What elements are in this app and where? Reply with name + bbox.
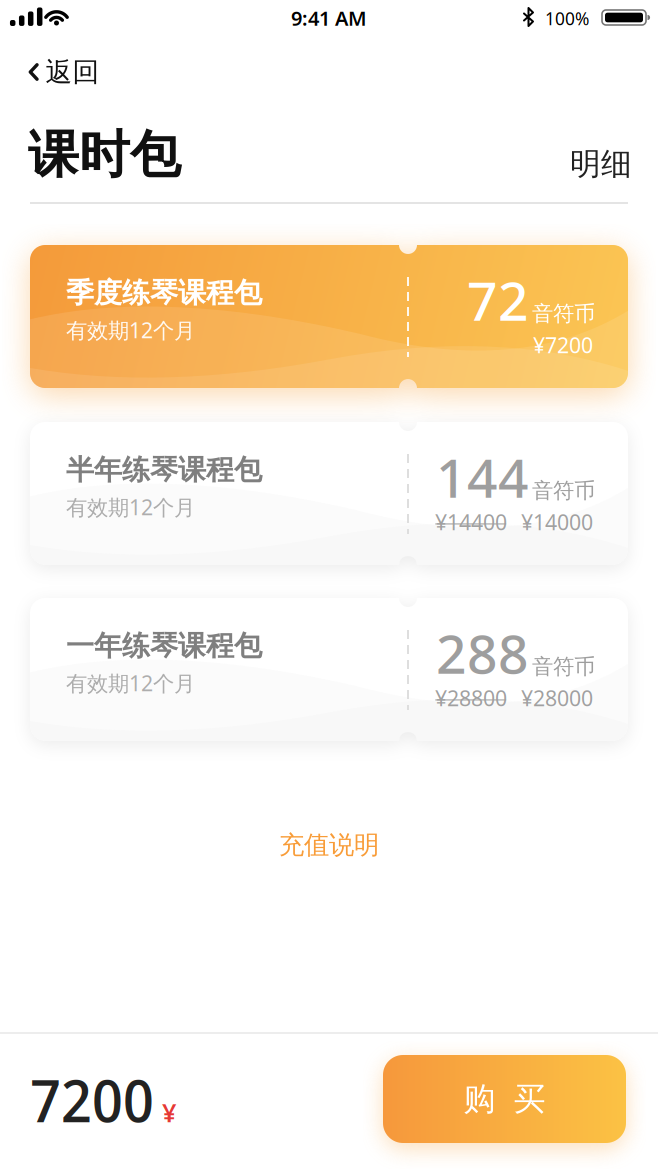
staticText: 买 — [513, 1079, 545, 1119]
staticText: 7200 — [30, 1061, 154, 1139]
staticText: 明细 — [570, 145, 632, 183]
staticText: ¥ — [162, 1096, 176, 1129]
staticText: ¥7200 — [533, 331, 593, 359]
staticText: 有效期12个月 — [66, 669, 195, 697]
button[interactable]: 明细 — [570, 145, 632, 183]
staticText: ¥14400 — [435, 508, 507, 536]
staticText: ¥14000 — [521, 508, 593, 536]
staticText: ¥28800 — [435, 684, 507, 712]
staticText: 音符币 — [532, 477, 595, 504]
staticText: 音符币 — [532, 653, 595, 680]
button[interactable]: 季度练琴课程包 — [30, 245, 628, 388]
button[interactable]: 一年练琴课程包 — [30, 598, 628, 741]
button[interactable]: 购 — [383, 1055, 626, 1143]
staticText: 100% — [545, 7, 589, 30]
staticText: 半年练琴课程包 — [66, 453, 262, 487]
staticText: 课时包 — [28, 124, 181, 186]
staticText: 音符币 — [532, 300, 595, 327]
staticText: 72 — [467, 265, 529, 335]
staticText: 288 — [436, 618, 529, 688]
staticText: 有效期12个月 — [66, 316, 195, 344]
staticText: 购 — [463, 1079, 495, 1119]
staticText: ¥28000 — [521, 684, 593, 712]
staticText: 有效期12个月 — [66, 493, 195, 521]
staticText: 144 — [436, 442, 529, 512]
button[interactable]: 半年练琴课程包 — [30, 422, 628, 565]
staticText: 季度练琴课程包 — [66, 276, 262, 310]
button[interactable]: 充值说明 — [279, 829, 379, 860]
staticText: 充值说明 — [279, 829, 379, 860]
button[interactable]: 返回 — [28, 56, 99, 88]
staticText: 返回 — [45, 56, 99, 88]
staticText: 一年练琴课程包 — [66, 629, 262, 663]
staticText: 9:41 AM — [291, 5, 367, 31]
